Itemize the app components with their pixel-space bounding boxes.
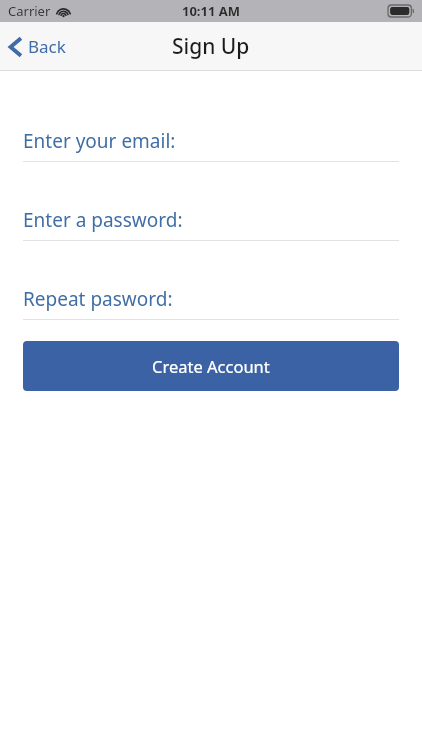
staticText: Enter a password: xyxy=(23,207,183,233)
staticText: 10:11 AM xyxy=(182,2,241,20)
staticText: Create Account xyxy=(152,355,270,377)
staticText: Enter your email: xyxy=(23,128,176,154)
button[interactable]: Back xyxy=(0,29,78,64)
button[interactable]: Enter your email: xyxy=(23,128,399,162)
staticText: Carrier xyxy=(8,2,51,20)
button[interactable]: Enter a password: xyxy=(23,207,399,241)
staticText: Sign Up xyxy=(172,32,250,61)
button[interactable]: Create Account xyxy=(23,341,399,391)
other: Back xyxy=(9,36,22,58)
staticText: Repeat pasword: xyxy=(23,286,173,312)
staticText: Back xyxy=(28,35,66,58)
button[interactable]: Repeat pasword: xyxy=(23,286,399,320)
